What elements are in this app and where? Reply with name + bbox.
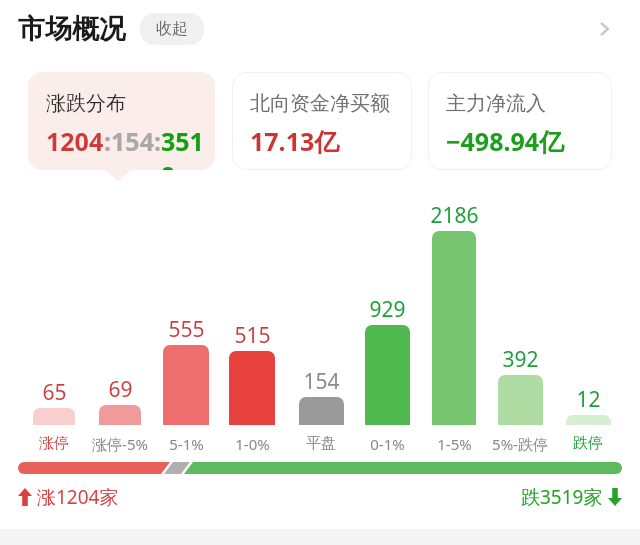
- staticText: 平盘: [306, 434, 336, 453]
- staticText: 收起: [156, 19, 188, 39]
- staticText: 515: [234, 321, 271, 350]
- button[interactable]: More: [582, 7, 626, 51]
- staticText: 市场概况: [18, 12, 126, 46]
- button[interactable]: 北向资金净买额: [232, 72, 412, 170]
- staticText: 5-1%: [169, 434, 204, 454]
- button[interactable]: 主力净流入: [428, 72, 612, 170]
- staticText: 929: [369, 295, 406, 324]
- staticText: 涨停-5%: [92, 434, 148, 454]
- button[interactable]: 涨跌分布: [28, 72, 215, 170]
- staticText: 3519: [161, 124, 215, 170]
- staticText: 5%-跌停: [492, 434, 548, 454]
- staticText: 0-1%: [370, 434, 405, 454]
- staticText: 1-5%: [437, 434, 472, 454]
- staticText: 555: [168, 315, 205, 344]
- staticText: 2186: [430, 201, 479, 230]
- staticText: 涨停: [39, 434, 69, 453]
- staticText: 17.13亿: [250, 124, 340, 158]
- staticText: 涨跌分布: [46, 91, 126, 116]
- staticText: 1204: [46, 124, 104, 158]
- staticText: 69: [108, 375, 133, 404]
- button[interactable]: 收起: [140, 13, 204, 45]
- staticText: 跌3519家: [521, 484, 603, 510]
- staticText: 北向资金净买额: [250, 91, 390, 116]
- staticText: 涨1204家: [37, 484, 119, 510]
- staticText: 154: [303, 367, 340, 396]
- staticText: 392: [502, 345, 539, 374]
- staticText: :154:: [104, 124, 161, 158]
- staticText: 跌停: [573, 434, 603, 453]
- staticText: −498.94亿: [446, 124, 565, 158]
- staticText: 1-0%: [235, 434, 270, 454]
- staticText: 主力净流入: [446, 91, 546, 116]
- staticText: 65: [42, 378, 67, 407]
- staticText: 12: [576, 385, 601, 414]
